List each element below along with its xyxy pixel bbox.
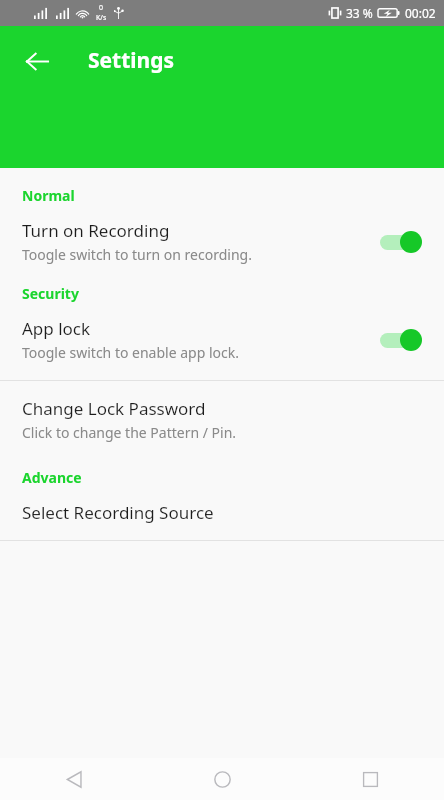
- staticText: Security: [22, 284, 79, 303]
- button[interactable]: Toggle: [378, 229, 424, 255]
- button[interactable]: Select Recording Source: [0, 501, 444, 524]
- button[interactable]: Home: [148, 758, 296, 800]
- button[interactable]: Recent apps: [296, 758, 444, 800]
- staticText: Turn on Recording: [22, 219, 170, 242]
- button[interactable]: Change Lock Password: [0, 397, 444, 442]
- staticText: 33 %: [346, 5, 373, 21]
- staticText: App lock: [22, 317, 91, 340]
- staticText: Advance: [22, 468, 82, 487]
- staticText: Normal: [22, 186, 75, 205]
- staticText: Settings: [88, 46, 175, 75]
- staticText: 0: [99, 3, 104, 13]
- staticText: Change Lock Password: [22, 397, 206, 420]
- button[interactable]: App lock: [0, 317, 444, 362]
- staticText: Toogle switch to enable app lock.: [22, 343, 239, 362]
- staticText: Select Recording Source: [22, 501, 214, 524]
- button[interactable]: Back: [0, 758, 148, 800]
- staticText: Toogle switch to turn on recording.: [22, 245, 252, 264]
- button[interactable]: Toggle: [378, 327, 424, 353]
- staticText: Click to change the Pattern / Pin.: [22, 423, 237, 442]
- staticText: 00:02: [405, 5, 436, 21]
- button[interactable]: Back: [16, 40, 58, 82]
- button[interactable]: Turn on Recording: [0, 219, 444, 264]
- staticText: K/s: [96, 13, 107, 23]
